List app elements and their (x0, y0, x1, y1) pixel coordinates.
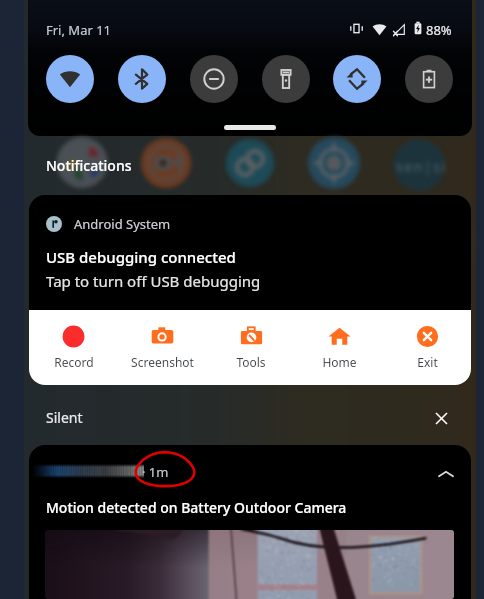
staticText: Tap to turn off USB debugging (46, 271, 261, 291)
button[interactable]: Silent (24, 395, 476, 440)
staticText: Silent (46, 408, 83, 427)
button[interactable]: Auto-rotate (333, 55, 381, 103)
staticText: 88% (426, 21, 452, 39)
button[interactable]: Battery Saver (405, 55, 453, 103)
button[interactable]: Screenshot (118, 310, 207, 385)
staticText: USB debugging connected (46, 247, 236, 267)
staticText: sen|si (396, 157, 447, 176)
button[interactable]: Record (29, 310, 118, 385)
staticText: Record (54, 354, 94, 370)
button[interactable]: Exit (383, 310, 471, 385)
staticText: Screenshot (131, 354, 194, 370)
staticText: Exit (417, 354, 438, 370)
staticText: Motion detected on Battery Outdoor Camer… (46, 498, 347, 517)
button[interactable]: · 1m (29, 445, 471, 599)
button[interactable]: Android System (29, 195, 471, 385)
staticText: Home (322, 354, 357, 370)
staticText: Tools (236, 354, 266, 370)
button[interactable]: Bluetooth (118, 55, 166, 103)
button[interactable]: Clear all (427, 404, 455, 432)
staticText: Notifications (46, 156, 132, 175)
button[interactable]: Home (295, 310, 383, 385)
button[interactable]: Collapse (432, 460, 460, 488)
button[interactable]: Wi-Fi (46, 55, 94, 103)
button[interactable]: Tools (207, 310, 295, 385)
staticText: Fri, Mar 11 (46, 21, 112, 39)
staticText: · 1m (142, 463, 169, 481)
staticText: Android System (74, 215, 171, 233)
button[interactable]: Do Not Disturb (190, 55, 238, 103)
button[interactable]: Flashlight (262, 55, 310, 103)
